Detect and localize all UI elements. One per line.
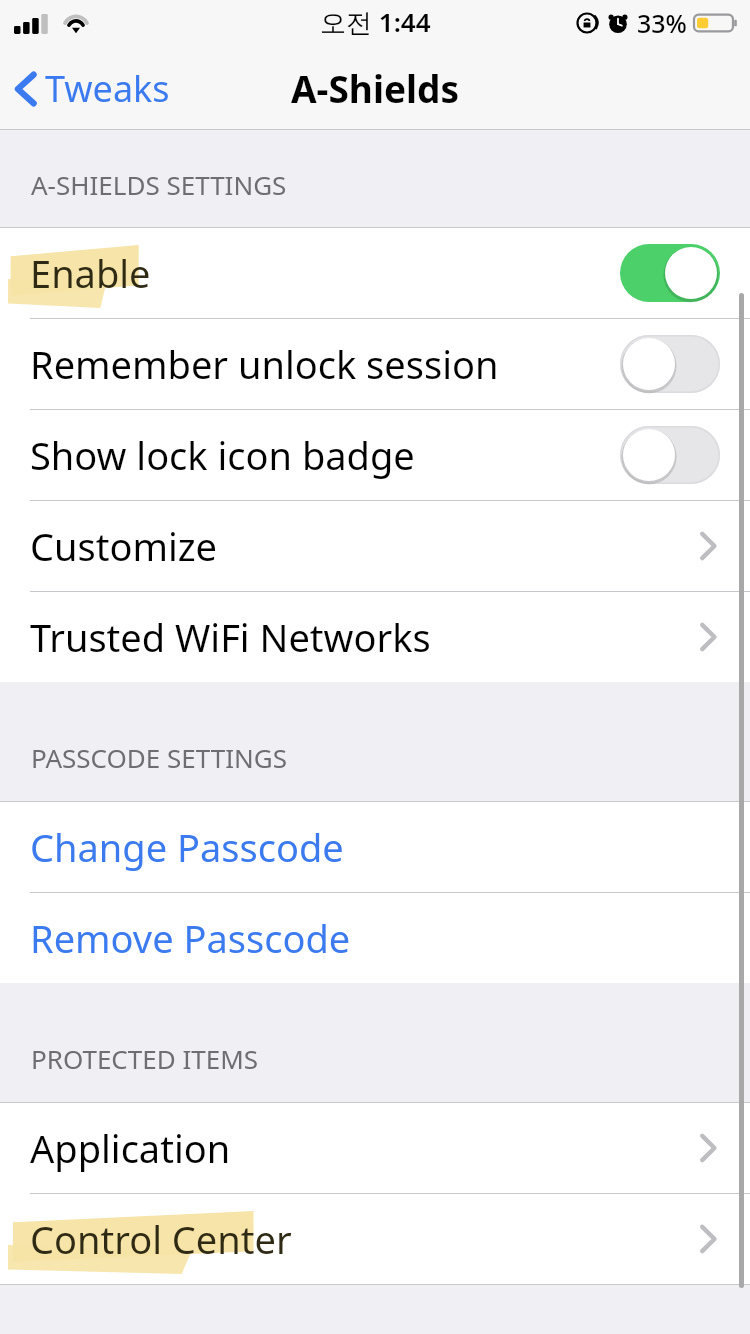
button[interactable]: Tweaks xyxy=(0,56,184,121)
staticText: Remember unlock session xyxy=(30,338,499,390)
button[interactable]: Trusted WiFi Networks xyxy=(0,592,750,682)
staticText: Control Center xyxy=(30,1213,292,1265)
button[interactable]: Off xyxy=(620,335,720,393)
button[interactable]: Remember unlock session xyxy=(0,319,750,409)
button[interactable]: Off xyxy=(620,426,720,484)
staticText: A-Shields xyxy=(291,63,460,113)
button[interactable]: Enable xyxy=(0,228,750,318)
staticText: 오전 1:44 xyxy=(320,4,431,40)
staticText: Show lock icon badge xyxy=(30,429,415,481)
staticText: Enable xyxy=(30,247,151,299)
button[interactable]: Customize xyxy=(0,501,750,591)
button[interactable]: Control Center xyxy=(0,1194,750,1284)
button[interactable]: Change Passcode xyxy=(0,802,750,892)
staticText: Trusted WiFi Networks xyxy=(30,611,431,663)
staticText: A-SHIELDS SETTINGS xyxy=(31,167,287,202)
button[interactable]: Show lock icon badge xyxy=(0,410,750,500)
button[interactable]: Application xyxy=(0,1103,750,1193)
staticText: 33% xyxy=(637,6,687,40)
staticText: PROTECTED ITEMS xyxy=(31,1041,259,1076)
staticText: PASSCODE SETTINGS xyxy=(31,740,287,775)
staticText: Change Passcode xyxy=(30,821,344,873)
staticText: Customize xyxy=(30,520,218,572)
button[interactable]: On xyxy=(620,244,720,302)
staticText: Application xyxy=(30,1122,231,1174)
staticText: Tweaks xyxy=(45,64,170,113)
button[interactable]: Remove Passcode xyxy=(0,893,750,983)
staticText: Remove Passcode xyxy=(30,912,351,964)
